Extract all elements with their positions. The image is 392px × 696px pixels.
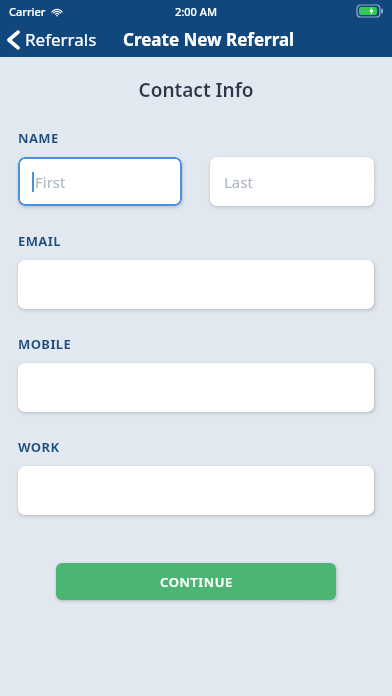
staticText: Carrier xyxy=(9,4,46,19)
staticText: EMAIL xyxy=(18,232,61,250)
button[interactable]: First xyxy=(18,157,182,206)
staticText: MOBILE xyxy=(18,335,72,353)
button[interactable]: CONTINUE xyxy=(56,563,336,600)
staticText: Last xyxy=(224,172,253,192)
staticText: CONTINUE xyxy=(160,573,233,591)
other: Back xyxy=(8,31,19,49)
staticText: First xyxy=(35,172,66,192)
staticText: Create New Referral xyxy=(123,28,295,51)
button[interactable]: Last xyxy=(210,157,374,206)
staticText: Contact Info xyxy=(0,77,392,103)
staticText: WORK xyxy=(18,438,60,456)
staticText: NAME xyxy=(18,129,59,147)
staticText: Referrals xyxy=(25,28,97,51)
staticText: 2:00 AM xyxy=(175,4,218,19)
button[interactable]: Back xyxy=(0,24,105,55)
